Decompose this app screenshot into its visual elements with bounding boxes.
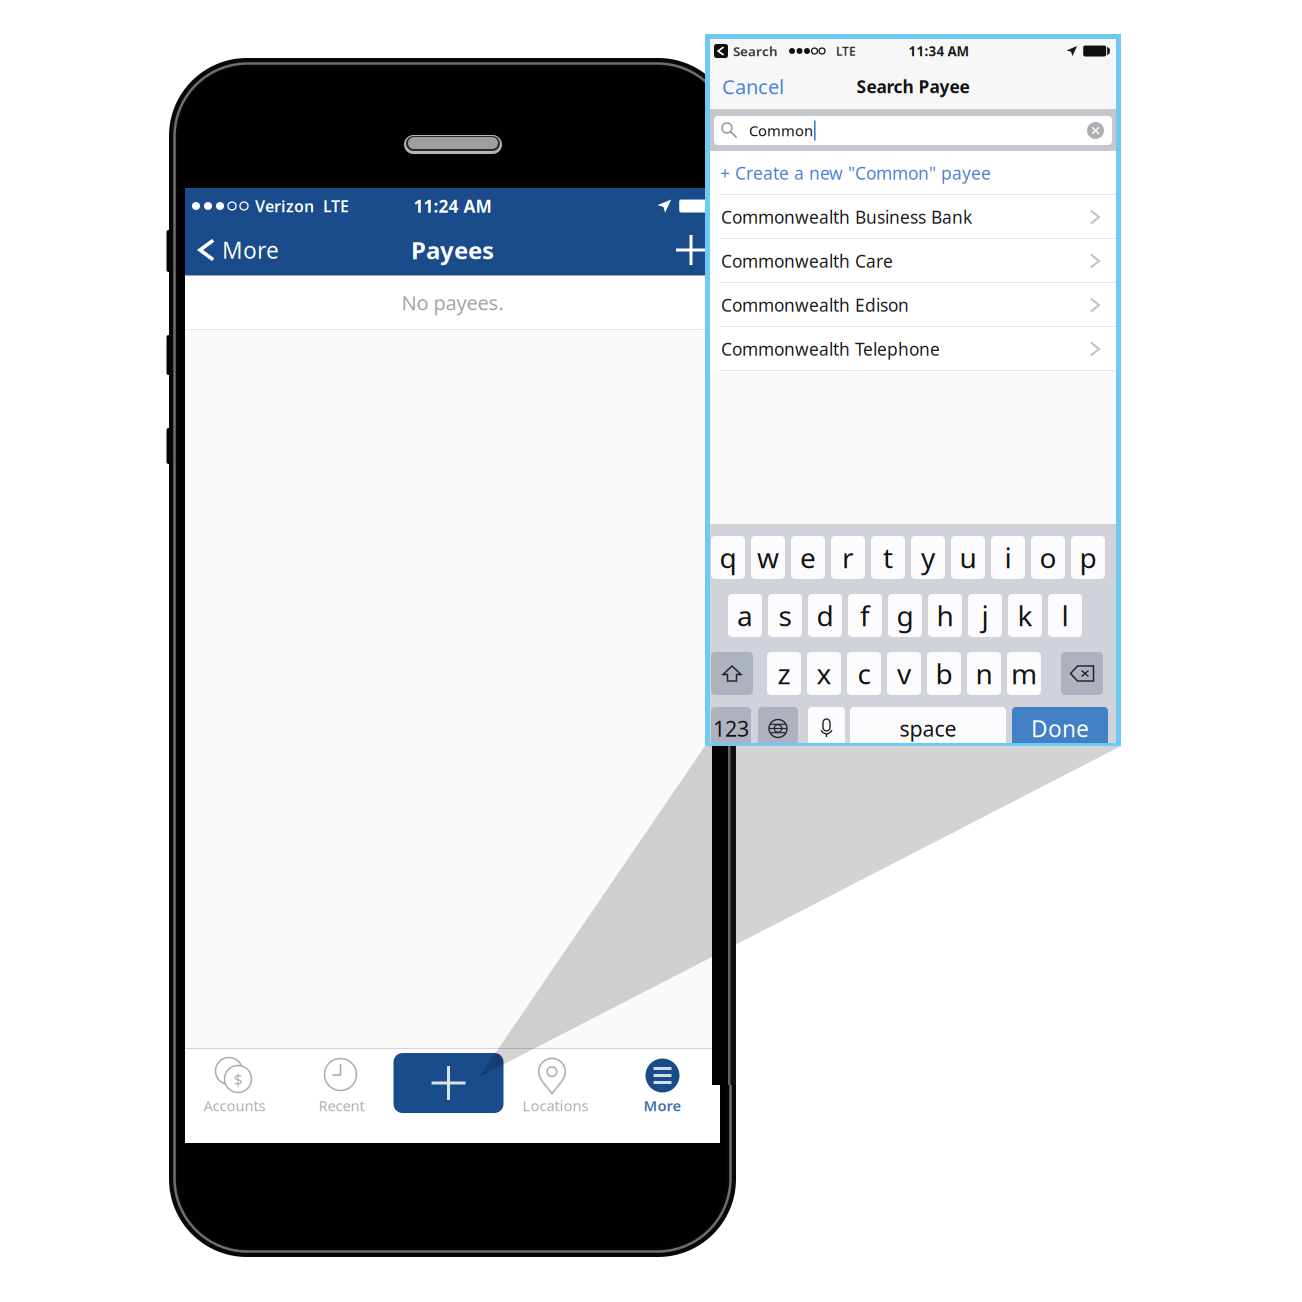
button[interactable]: Commonwealth Care — [710, 239, 1116, 283]
button[interactable]: Recent — [288, 1050, 395, 1145]
button[interactable]: New transaction — [395, 1048, 502, 1148]
staticText: LTE — [323, 195, 349, 217]
staticText: Search Payee — [856, 75, 969, 98]
button[interactable]: space — [850, 707, 1006, 750]
button[interactable]: Cancel — [710, 63, 832, 110]
button[interactable]: p — [1071, 536, 1105, 579]
button[interactable]: Done — [1012, 707, 1108, 750]
staticText: x — [816, 655, 831, 692]
staticText: Cancel — [722, 73, 784, 100]
button[interactable]: q — [711, 536, 745, 579]
staticText: v — [897, 655, 911, 692]
staticText: Commonwealth Telephone — [721, 337, 940, 360]
staticText: More — [643, 1095, 681, 1115]
staticText: f — [860, 597, 870, 634]
staticText: + Create a new "Common" payee — [720, 161, 991, 184]
button[interactable]: More — [185, 224, 291, 276]
staticText: Done — [1031, 713, 1089, 743]
staticText: w — [757, 539, 779, 576]
staticText: No payees. — [401, 289, 503, 316]
staticText: q — [719, 539, 736, 576]
staticText: y — [921, 539, 935, 576]
button[interactable]: Clear text — [1079, 116, 1112, 145]
staticText: Recent — [318, 1095, 364, 1115]
staticText: Verizon — [255, 195, 314, 217]
staticText: m — [1011, 655, 1037, 692]
staticText: a — [737, 597, 753, 634]
staticText: Common — [749, 121, 813, 140]
button[interactable]: Commonwealth Business Bank — [710, 195, 1116, 239]
staticText: u — [959, 539, 976, 576]
staticText: n — [975, 655, 992, 692]
button[interactable]: t — [871, 536, 905, 579]
button[interactable]: f — [848, 594, 882, 637]
staticText: e — [800, 539, 816, 576]
staticText: j — [981, 597, 988, 634]
staticText: o — [1039, 539, 1056, 576]
staticText: Commonwealth Care — [721, 249, 893, 272]
staticText: Commonwealth Edison — [721, 293, 909, 316]
button[interactable]: j — [968, 594, 1002, 637]
button[interactable]: Commonwealth Telephone — [710, 327, 1116, 371]
staticText: 123 — [713, 714, 749, 743]
staticText: LTE — [836, 43, 856, 59]
button[interactable]: Add payee — [664, 224, 720, 276]
button[interactable]: Delete — [1061, 652, 1103, 695]
staticText: g — [896, 597, 913, 634]
staticText: l — [1061, 597, 1068, 634]
button[interactable]: $ — [181, 1050, 288, 1145]
staticText: Search — [733, 42, 778, 60]
staticText: Commonwealth Business Bank — [721, 205, 972, 228]
button[interactable]: u — [951, 536, 985, 579]
staticText: More — [222, 235, 279, 265]
button[interactable]: y — [911, 536, 945, 579]
button[interactable]: c — [847, 652, 881, 695]
button[interactable]: l — [1048, 594, 1082, 637]
staticText: 11:34 AM — [909, 42, 970, 60]
staticText: t — [883, 539, 893, 576]
button[interactable]: i — [991, 536, 1025, 579]
staticText: c — [857, 655, 870, 692]
staticText: i — [1004, 539, 1011, 576]
button[interactable]: Commonwealth Edison — [710, 283, 1116, 327]
staticText: Payees — [411, 234, 494, 266]
button[interactable]: k — [1008, 594, 1042, 637]
staticText: Locations — [522, 1095, 588, 1115]
button[interactable]: Next keyboard — [758, 707, 798, 750]
button[interactable]: w — [751, 536, 785, 579]
button[interactable]: h — [928, 594, 962, 637]
staticText: p — [1079, 539, 1096, 576]
staticText: d — [816, 597, 833, 634]
staticText: 11:24 AM — [413, 194, 491, 218]
button[interactable]: a — [728, 594, 762, 637]
staticText: k — [1017, 597, 1032, 634]
button[interactable]: Dictation — [808, 707, 845, 750]
button[interactable]: 123 — [711, 707, 751, 750]
button[interactable]: Shift — [711, 652, 753, 695]
button[interactable]: e — [791, 536, 825, 579]
button[interactable]: + Create a new "Common" payee — [710, 151, 1116, 195]
staticText: $ — [233, 1068, 242, 1090]
button[interactable]: s — [768, 594, 802, 637]
button[interactable]: Locations — [502, 1050, 609, 1145]
button[interactable]: g — [888, 594, 922, 637]
staticText: s — [778, 597, 791, 634]
staticText: Accounts — [203, 1095, 265, 1115]
button[interactable]: d — [808, 594, 842, 637]
button[interactable]: b — [927, 652, 961, 695]
staticText: space — [899, 714, 956, 743]
button[interactable]: m — [1007, 652, 1041, 695]
button[interactable]: n — [967, 652, 1001, 695]
button[interactable]: o — [1031, 536, 1065, 579]
button[interactable]: More — [609, 1050, 716, 1145]
staticText: r — [842, 539, 854, 576]
staticText: z — [777, 655, 790, 692]
staticText: h — [936, 597, 953, 634]
button[interactable]: r — [831, 536, 865, 579]
button[interactable]: v — [887, 652, 921, 695]
button[interactable]: x — [807, 652, 841, 695]
button[interactable]: z — [767, 652, 801, 695]
staticText: b — [935, 655, 952, 692]
